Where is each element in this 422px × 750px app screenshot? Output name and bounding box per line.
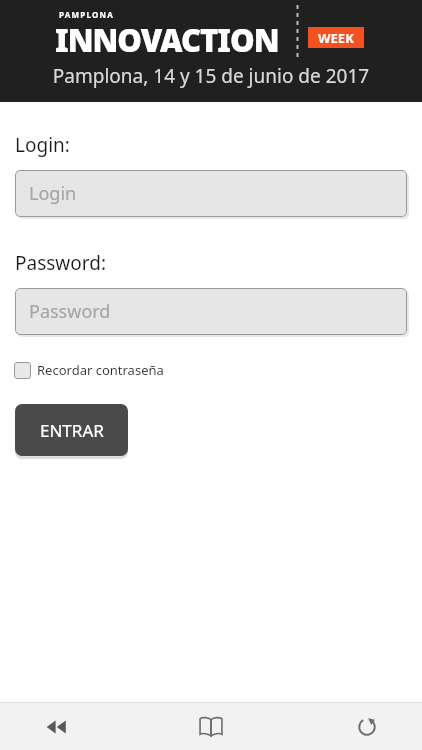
staticText: Password: <box>15 250 107 276</box>
staticText: Pamplona, 14 y 15 de junio de 2017 <box>0 63 422 89</box>
button[interactable]: Reload <box>281 703 422 750</box>
button[interactable]: Login <box>15 170 407 217</box>
button[interactable]: Recordar contraseña <box>14 361 164 379</box>
staticText: WEEK <box>318 29 354 47</box>
button[interactable]: Password <box>15 288 407 335</box>
staticText: INNOVACTION <box>55 19 279 61</box>
staticText: Recordar contraseña <box>37 361 164 379</box>
staticText: Login <box>29 181 77 206</box>
button[interactable]: ENTRAR <box>15 404 128 456</box>
button[interactable]: Bookmarks <box>140 703 281 750</box>
staticText: PAMPLONA <box>59 9 114 20</box>
staticText: Password <box>29 299 111 324</box>
button[interactable]: Back <box>0 703 140 750</box>
staticText: Login: <box>15 132 70 158</box>
staticText: ENTRAR <box>40 419 104 442</box>
